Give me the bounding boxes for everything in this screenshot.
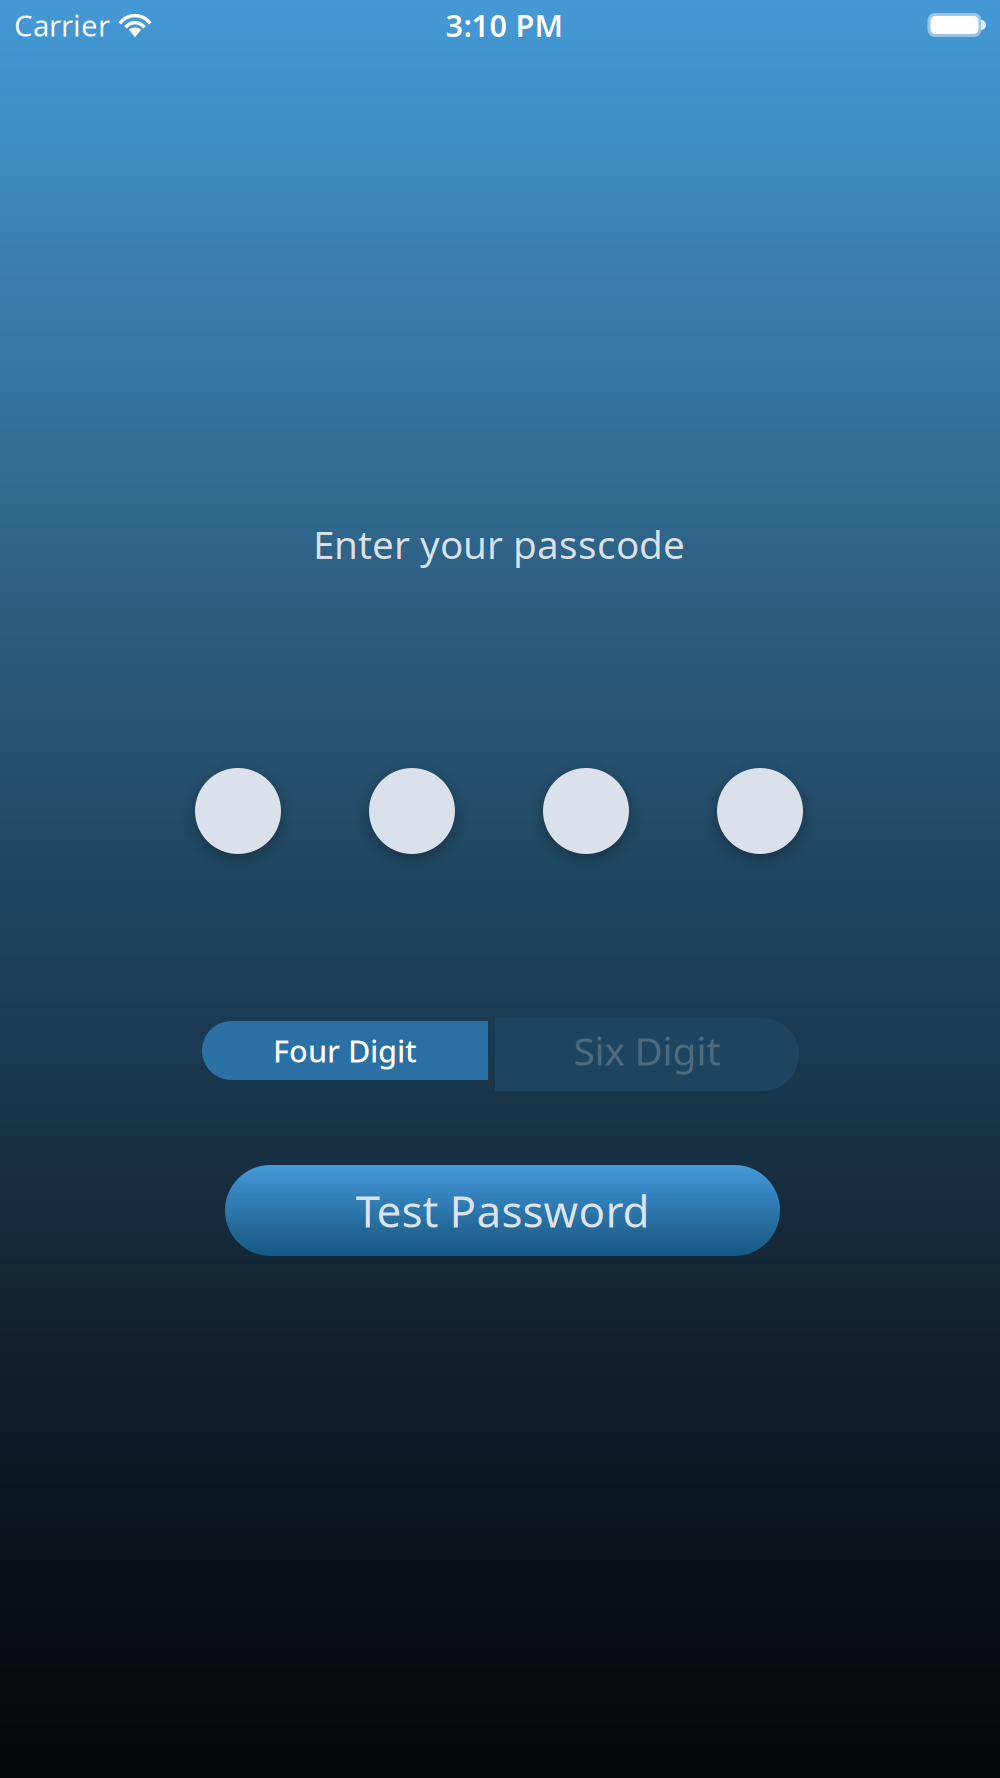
staticText: Carrier <box>14 5 110 44</box>
button[interactable]: Test Password <box>225 1165 780 1256</box>
staticText: Four Digit <box>273 1030 417 1071</box>
button[interactable]: Six Digit <box>495 1018 799 1091</box>
staticText: Six Digit <box>573 1025 720 1076</box>
staticText: Test Password <box>355 1181 649 1240</box>
button[interactable]: Four Digit <box>202 1021 488 1080</box>
staticText: Enter your passcode <box>313 518 685 570</box>
staticText: 3:10 PM <box>445 5 562 45</box>
